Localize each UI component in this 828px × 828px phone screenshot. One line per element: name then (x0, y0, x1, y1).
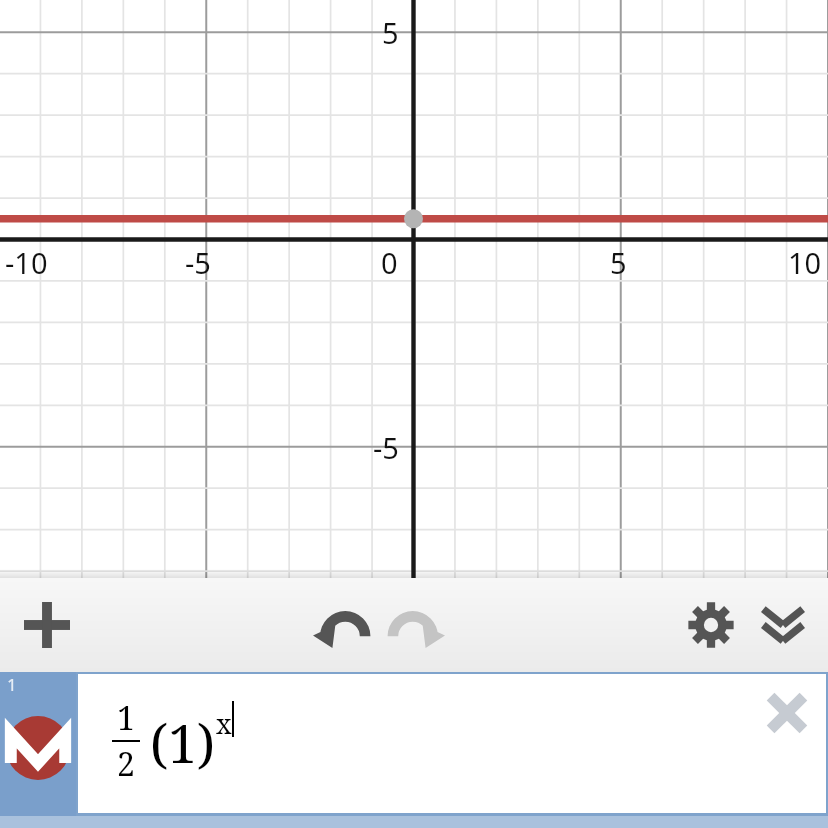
button[interactable]: Delete expression (756, 682, 818, 744)
staticText: 1 (117, 696, 135, 740)
staticText: -10 (5, 243, 48, 282)
button[interactable]: Redo (380, 590, 450, 660)
staticText: 0 (381, 243, 398, 282)
staticText: 2 (117, 742, 135, 786)
staticText: (1) (150, 707, 216, 778)
staticText: x (216, 705, 232, 742)
button[interactable]: -10 (0, 0, 828, 578)
button[interactable]: Expression 1 color (0, 672, 76, 816)
staticText: 1 (7, 673, 17, 696)
staticText: -5 (373, 428, 399, 467)
staticText: -5 (185, 243, 211, 282)
button[interactable]: Undo (308, 590, 378, 660)
staticText: 10 (788, 243, 822, 282)
staticText: 5 (610, 243, 627, 282)
button[interactable]: Add expression (14, 592, 80, 658)
button[interactable]: Settings (677, 591, 745, 659)
button[interactable]: Collapse (749, 591, 817, 659)
staticText: 5 (382, 13, 399, 52)
button[interactable]: 1 (78, 674, 826, 813)
